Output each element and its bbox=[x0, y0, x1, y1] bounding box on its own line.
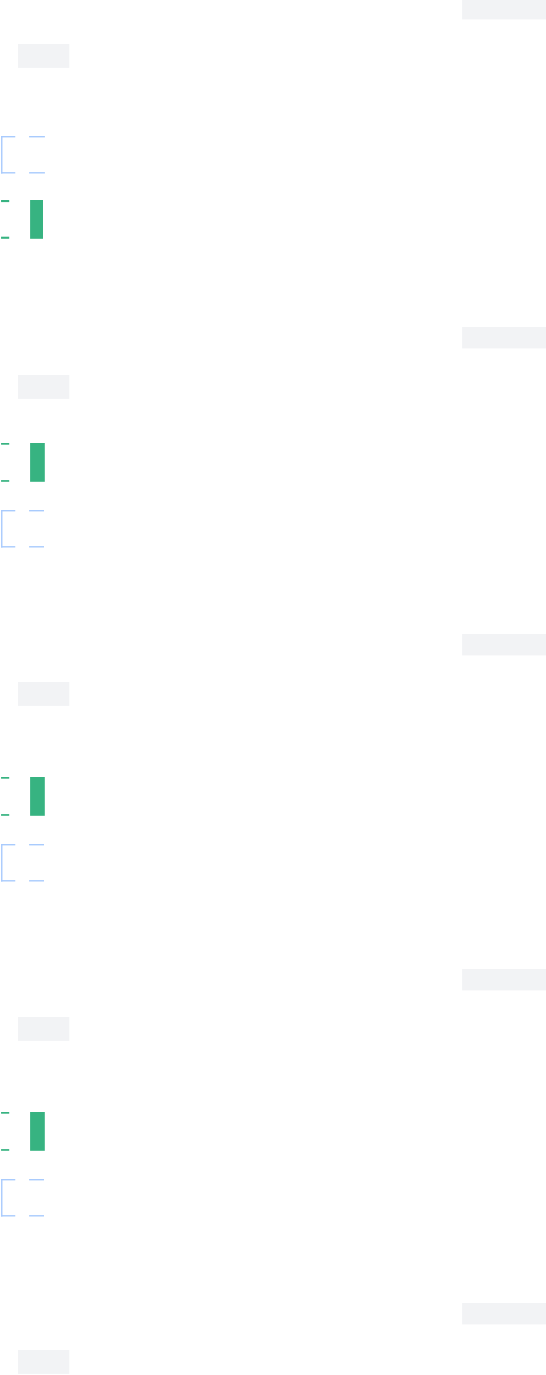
button[interactable]: Secondary action bbox=[0, 136, 46, 174]
button[interactable]: Primary action bbox=[0, 777, 46, 817]
button[interactable]: Secondary action bbox=[0, 510, 46, 548]
button[interactable]: Primary action bbox=[0, 443, 46, 483]
button[interactable]: Secondary action bbox=[0, 1179, 46, 1217]
button[interactable]: Secondary action bbox=[0, 844, 46, 882]
button[interactable]: Primary action bbox=[0, 200, 46, 240]
button[interactable]: Primary action bbox=[0, 1112, 46, 1152]
